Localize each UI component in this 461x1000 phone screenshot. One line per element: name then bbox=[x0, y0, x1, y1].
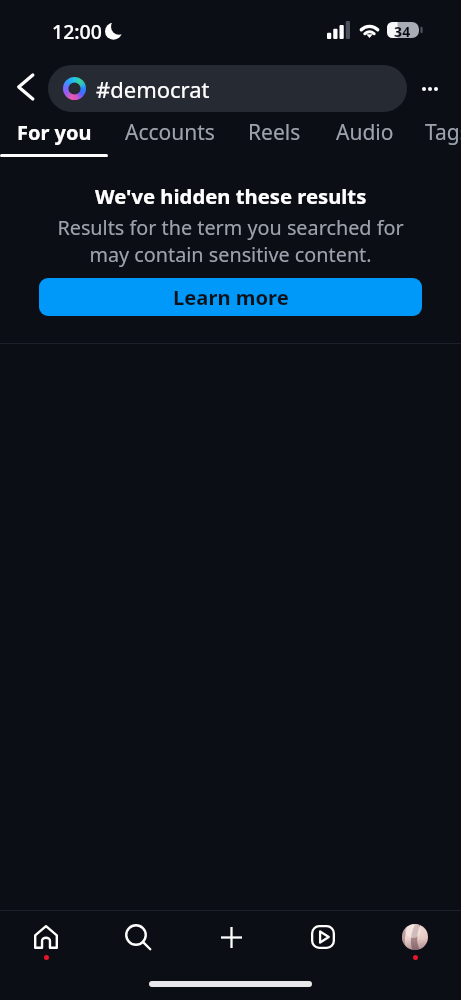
button[interactable]: Home bbox=[0, 911, 92, 973]
staticText: 12:00 bbox=[52, 18, 102, 45]
staticText: Audio bbox=[336, 118, 394, 147]
staticText: Learn more bbox=[173, 283, 289, 311]
button[interactable]: Back bbox=[2, 64, 48, 110]
button[interactable]: For you bbox=[0, 117, 108, 159]
button[interactable]: Search bbox=[92, 911, 184, 973]
button[interactable]: #democrat bbox=[48, 65, 407, 112]
staticText: Reels bbox=[248, 118, 301, 147]
staticText: 34 bbox=[394, 22, 411, 38]
button[interactable]: Reels bbox=[277, 911, 369, 973]
staticText: Tags bbox=[425, 118, 461, 147]
button[interactable]: Learn more bbox=[39, 278, 422, 316]
button[interactable]: Reels bbox=[232, 117, 317, 159]
button[interactable]: Profile bbox=[369, 911, 461, 973]
button[interactable]: Audio bbox=[317, 117, 412, 159]
staticText: Results for the term you searched for ma… bbox=[44, 214, 417, 268]
button[interactable]: Accounts bbox=[108, 117, 232, 159]
staticText: #democrat bbox=[96, 74, 210, 104]
button[interactable]: Tags bbox=[412, 117, 461, 159]
button[interactable]: More options bbox=[405, 64, 455, 114]
button[interactable]: Create bbox=[185, 911, 277, 973]
staticText: For you bbox=[17, 119, 92, 146]
staticText: Accounts bbox=[125, 118, 215, 147]
staticText: We've hidden these results bbox=[95, 182, 367, 210]
